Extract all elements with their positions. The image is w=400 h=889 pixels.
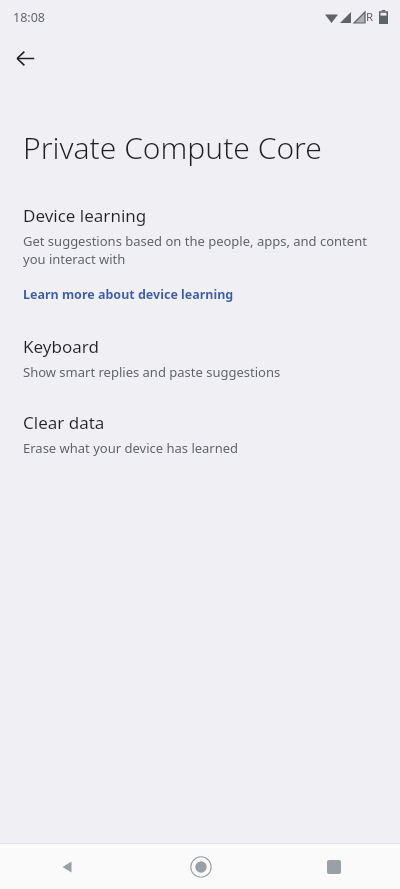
staticText: Clear data: [23, 411, 105, 434]
staticText: Get suggestions based on the people, app…: [23, 232, 377, 268]
staticText: Keyboard: [23, 335, 99, 358]
staticText: Erase what your device has learned: [23, 439, 239, 457]
button[interactable]: Clear data: [0, 409, 400, 459]
button[interactable]: Back: [0, 844, 134, 889]
button[interactable]: Keyboard: [0, 333, 400, 383]
staticText: Learn more about device learning: [23, 286, 234, 303]
staticText: Private Compute Core: [23, 127, 322, 168]
button[interactable]: Home: [134, 844, 267, 889]
button[interactable]: Recents: [267, 844, 400, 889]
button[interactable]: Device learning: [0, 204, 400, 268]
button[interactable]: Back: [9, 42, 41, 74]
staticText: R: [366, 9, 374, 25]
button[interactable]: Learn more about device learning: [0, 284, 400, 305]
staticText: Device learning: [23, 204, 147, 227]
staticText: Show smart replies and paste suggestions: [23, 363, 281, 381]
staticText: 18:08: [13, 9, 45, 26]
